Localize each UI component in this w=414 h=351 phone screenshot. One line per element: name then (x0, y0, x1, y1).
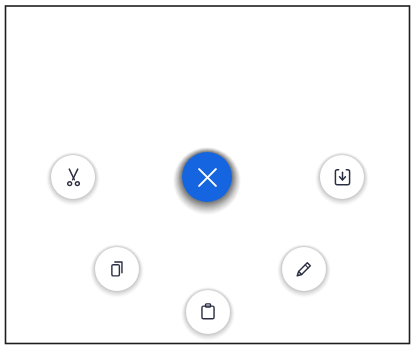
button[interactable]: Paste (186, 290, 230, 334)
button[interactable]: Close (182, 152, 232, 202)
button[interactable]: Edit (282, 247, 326, 291)
button[interactable]: Copy (95, 247, 139, 291)
button[interactable]: Cut (51, 155, 95, 199)
button[interactable]: Save (320, 155, 364, 199)
